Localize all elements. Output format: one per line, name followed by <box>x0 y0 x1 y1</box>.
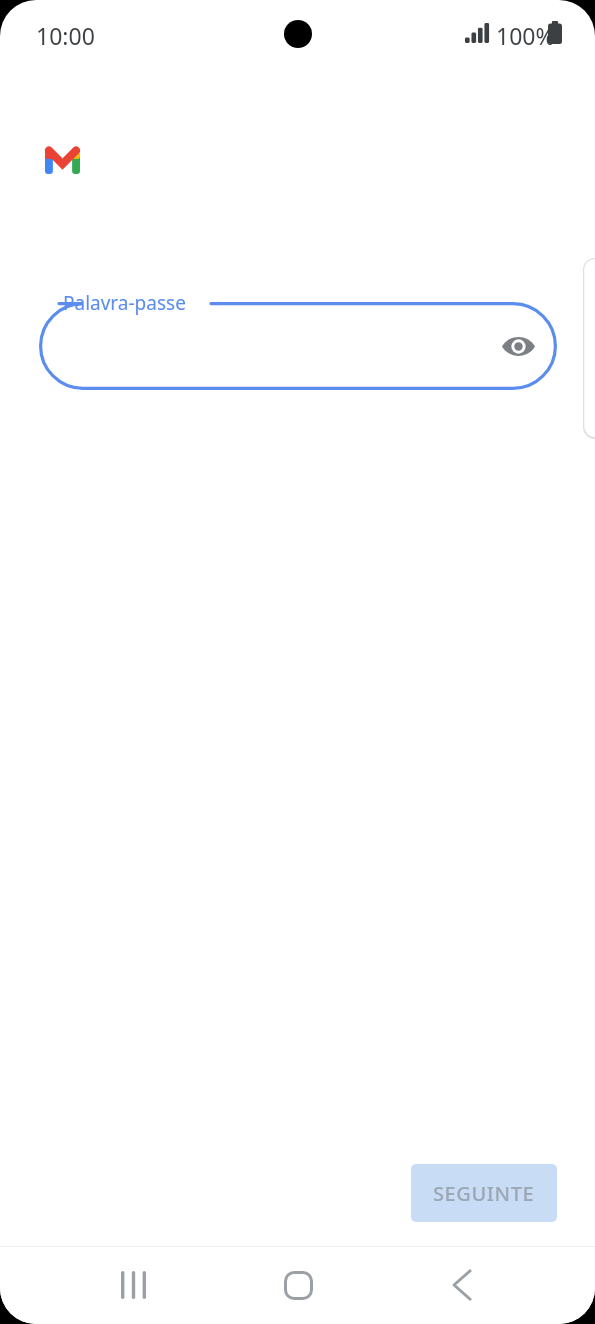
button[interactable]: SEGUINTE <box>411 1164 557 1222</box>
staticText: 100% <box>496 20 555 51</box>
button[interactable]: Início <box>263 1250 333 1320</box>
button[interactable]: Mostrar palavra-passe <box>491 319 545 373</box>
staticText: Palavra-passe <box>63 290 186 316</box>
staticText: 10:00 <box>36 20 95 51</box>
button[interactable]: Voltar <box>427 1250 497 1320</box>
button[interactable]: Mostrar palavra-passe <box>39 302 557 390</box>
staticText: SEGUINTE <box>433 1180 535 1207</box>
button[interactable]: Recentes <box>98 1250 168 1320</box>
